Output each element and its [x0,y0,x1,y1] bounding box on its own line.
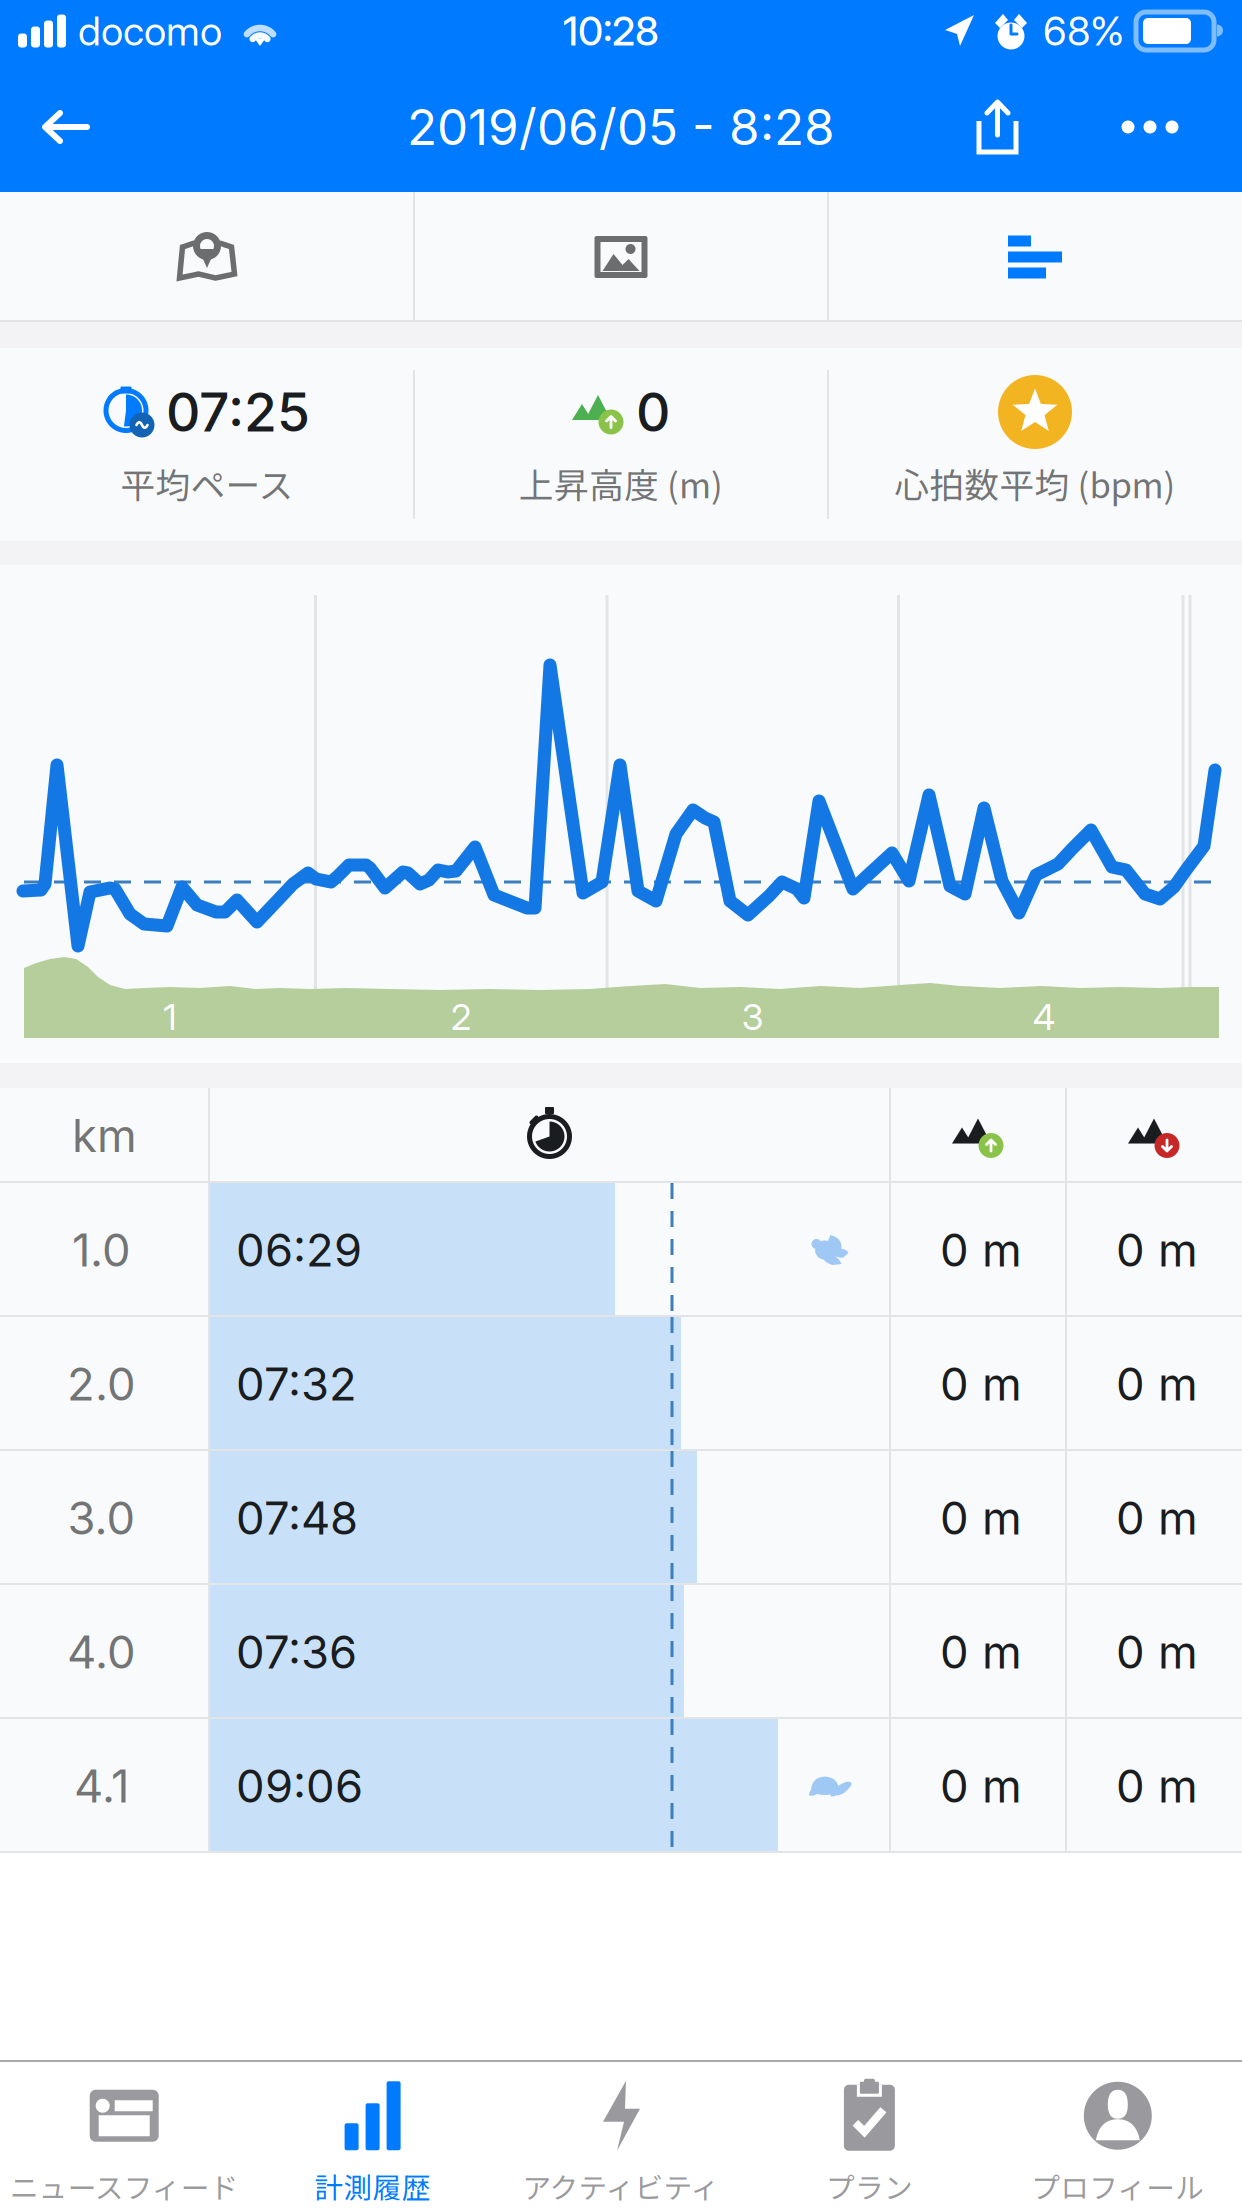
staticText: 10:28 [563,7,659,55]
staticText: 06:29 [236,1223,362,1277]
staticText: 4 [1033,995,1056,1039]
staticText: 07:36 [236,1625,357,1679]
staticText: 2.0 [67,1357,136,1411]
staticText: 3.0 [67,1491,135,1545]
staticText: 0 m [940,1759,1022,1813]
staticText: 4.1 [74,1759,129,1813]
staticText: 07:48 [236,1491,358,1545]
staticText: 68% [1043,7,1124,55]
staticText: 3 [742,995,764,1039]
staticText: docomo [78,7,222,55]
staticText: 1 [163,995,176,1039]
staticText: 計測履歴 [315,2165,431,2207]
staticText: 0 m [940,1223,1022,1277]
staticText: 07:25 [166,380,310,444]
staticText: 1.0 [72,1223,131,1277]
staticText: 0 m [1116,1759,1198,1813]
button[interactable]: アクティビティ [497,2061,745,2208]
staticText: km [72,1108,137,1163]
button[interactable]: Splits [828,192,1242,322]
staticText: 2019/06/05 - 8:28 [407,97,835,157]
button[interactable]: Share [937,62,1058,192]
staticText: 0 [636,380,670,444]
button[interactable]: Map [0,192,414,322]
staticText: 0 m [940,1491,1022,1545]
staticText: 平均ペース [120,458,293,508]
staticText: 2 [451,995,472,1039]
button[interactable]: ニュースフィード [0,2061,248,2208]
staticText: 0 m [1116,1357,1198,1411]
staticText: 07:32 [236,1357,357,1411]
button[interactable]: Photos [414,192,828,322]
button[interactable]: プラン [745,2061,994,2208]
staticText: ニュースフィード [10,2165,239,2207]
staticText: 0 m [940,1357,1022,1411]
staticText: プロフィール [1031,2165,1204,2207]
button[interactable]: More options [1058,62,1242,192]
staticText: 心拍数平均 (bpm) [894,458,1175,508]
staticText: 0 m [1116,1491,1198,1545]
staticText: 0 m [1116,1625,1198,1679]
staticText: アクティビティ [522,2165,719,2207]
button[interactable]: Back [0,62,132,192]
staticText: 上昇高度 (m) [519,458,723,508]
staticText: 0 m [1116,1223,1198,1277]
button[interactable]: プロフィール [994,2061,1242,2208]
staticText: 0 m [940,1625,1022,1679]
staticText: プラン [826,2165,913,2207]
button[interactable]: 計測履歴 [248,2061,497,2208]
staticText: 09:06 [236,1759,363,1813]
staticText: 4.0 [67,1625,136,1679]
